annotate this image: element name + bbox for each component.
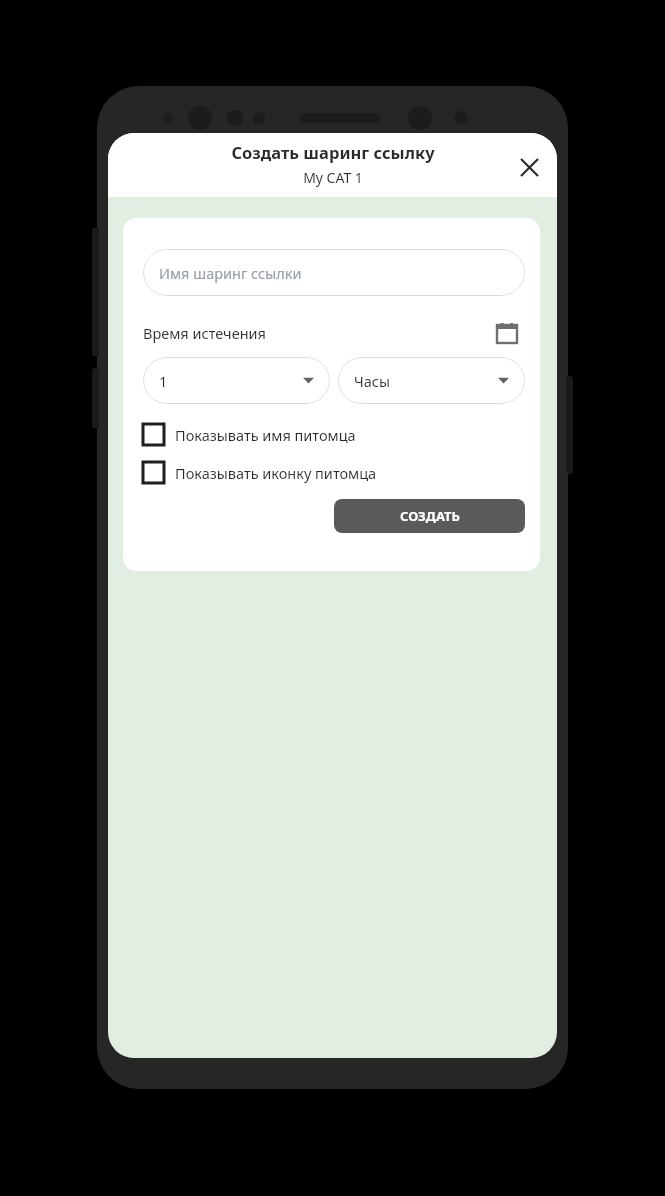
staticText: Часы <box>354 371 390 391</box>
staticText: 1 <box>159 371 168 391</box>
button[interactable]: 1 <box>143 357 330 404</box>
button[interactable]: Часы <box>338 357 525 404</box>
button[interactable]: Close <box>509 147 549 187</box>
button[interactable]: Pick date <box>489 315 525 351</box>
button[interactable]: СОЗДАТЬ <box>334 499 525 533</box>
staticText: Показывать иконку питомца <box>175 463 377 483</box>
staticText: My CAT 1 <box>303 168 363 187</box>
staticText: Время истечения <box>143 323 266 343</box>
button[interactable]: Имя шаринг ссылки <box>143 249 525 296</box>
staticText: Создать шаринг ссылку <box>231 141 435 163</box>
staticText: Показывать имя питомца <box>175 425 356 445</box>
staticText: Имя шаринг ссылки <box>159 263 302 283</box>
button[interactable]: Показывать иконку питомца <box>143 462 525 483</box>
button[interactable]: Показывать имя питомца <box>143 424 525 445</box>
staticText: СОЗДАТЬ <box>400 507 460 525</box>
